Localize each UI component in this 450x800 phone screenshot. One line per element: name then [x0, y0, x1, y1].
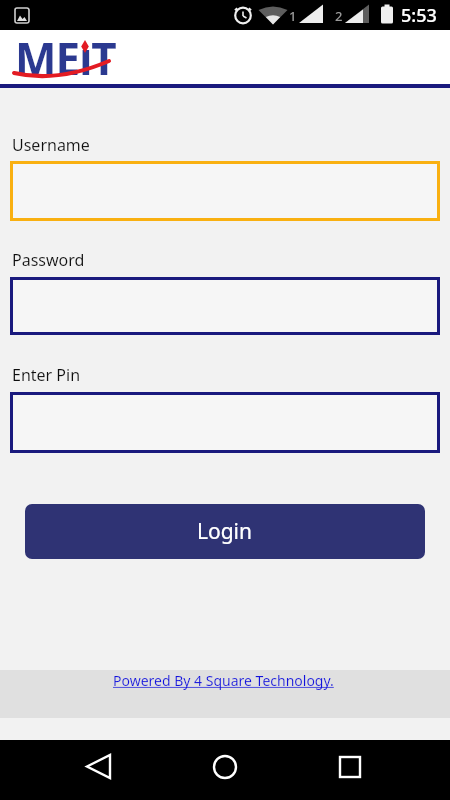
- button[interactable]: Powered By 4 Square Technology.: [113, 671, 338, 690]
- staticText: Enter Pin: [12, 364, 81, 386]
- staticText: Password: [12, 249, 85, 271]
- staticText: Username: [12, 134, 90, 156]
- button[interactable]: [10, 161, 440, 221]
- staticText: 1: [289, 7, 297, 25]
- staticText: 2: [335, 7, 343, 25]
- button[interactable]: [10, 392, 440, 453]
- staticText: 5:53: [401, 3, 437, 28]
- staticText: Login: [197, 517, 253, 546]
- staticText: MEıT: [15, 28, 116, 80]
- button[interactable]: [325, 745, 375, 795]
- button[interactable]: [10, 277, 440, 335]
- button[interactable]: Login: [25, 504, 425, 559]
- button[interactable]: [200, 745, 250, 795]
- button[interactable]: [75, 745, 125, 795]
